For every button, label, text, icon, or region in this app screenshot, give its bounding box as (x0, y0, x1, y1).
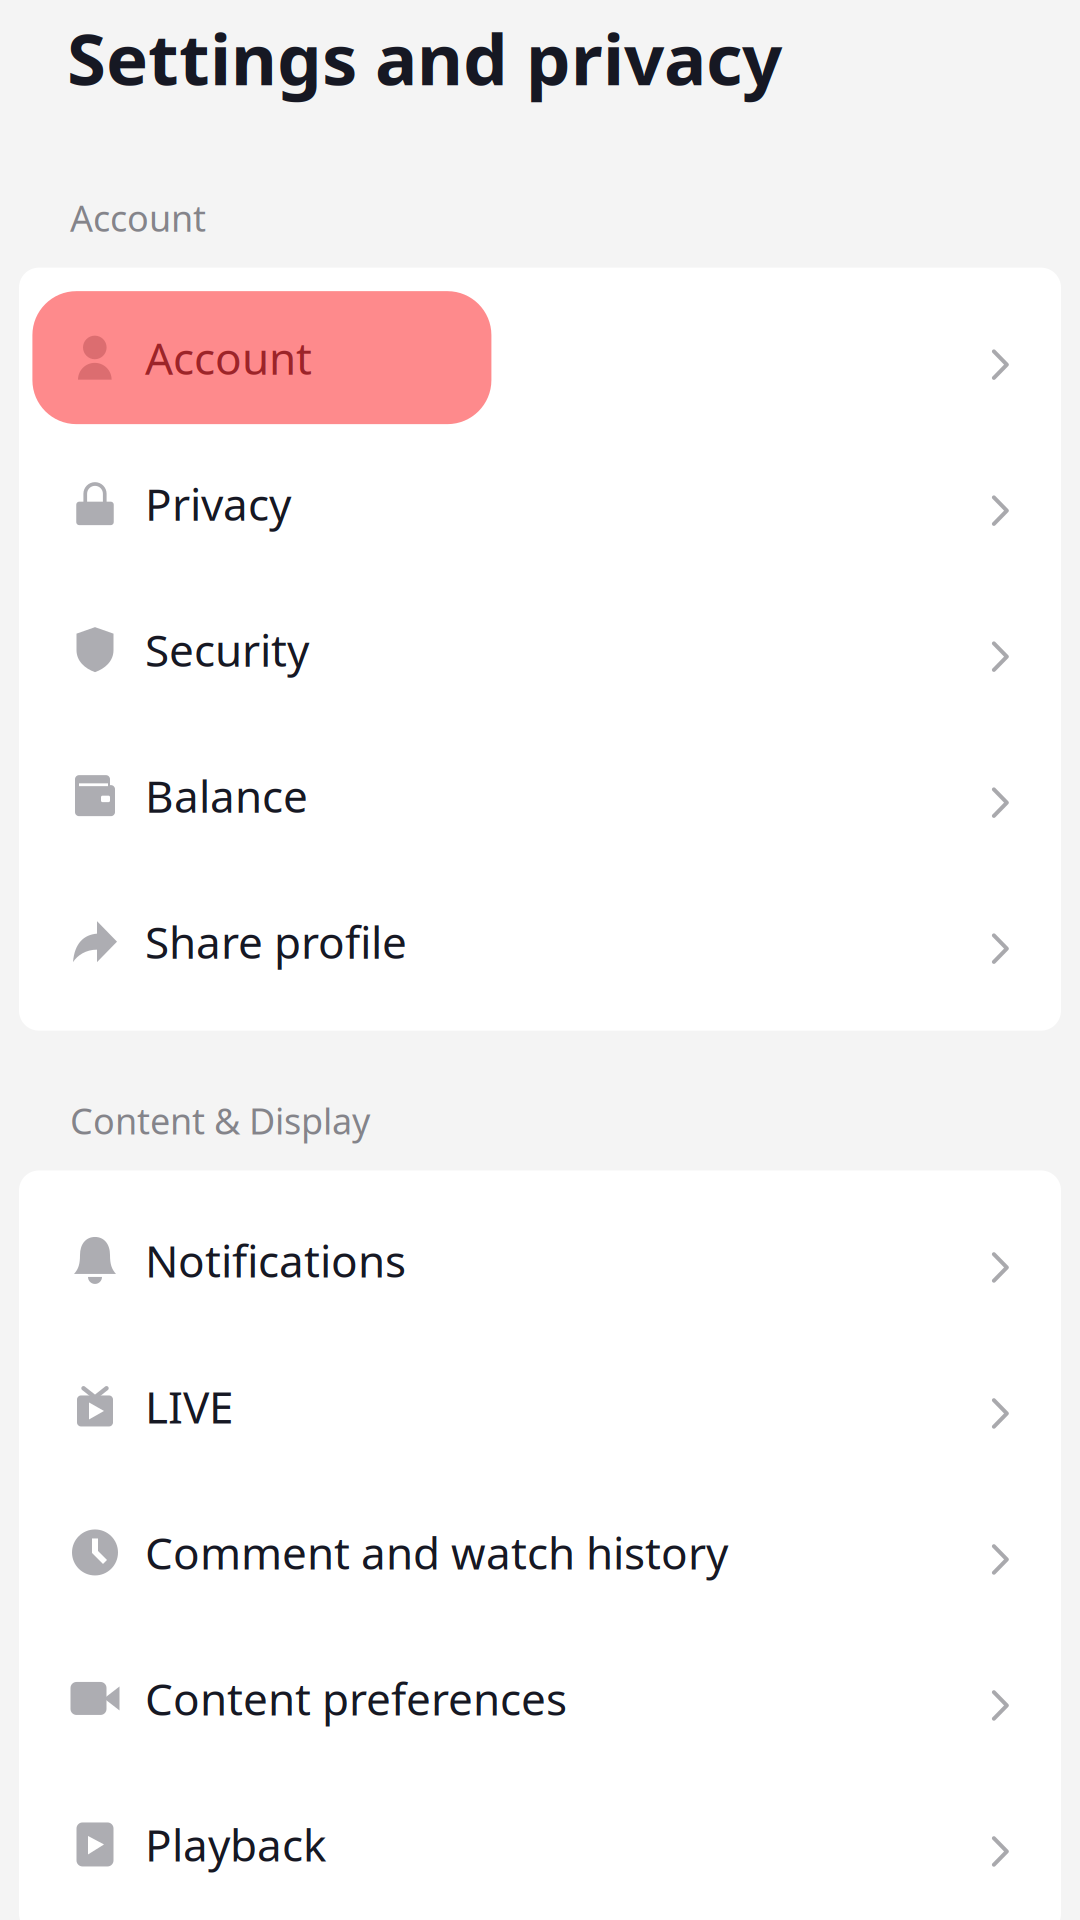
staticText: Privacy (145, 474, 291, 533)
button[interactable]: Security (19, 584, 1061, 730)
button[interactable]: Privacy (19, 438, 1061, 584)
button[interactable]: LIVE (19, 1340, 1061, 1486)
staticText: Notifications (145, 1231, 406, 1290)
staticText: Comment and watch history (145, 1523, 728, 1582)
staticText: Share profile (145, 912, 407, 971)
button[interactable]: Comment and watch history (19, 1486, 1061, 1632)
button[interactable]: Account (19, 292, 1061, 438)
button[interactable]: Share profile (19, 876, 1061, 1022)
staticText: Balance (145, 766, 308, 825)
button[interactable]: Playback (19, 1778, 1061, 1920)
button[interactable]: Content preferences (19, 1632, 1061, 1778)
staticText: LIVE (145, 1377, 233, 1436)
staticText: Settings and privacy (67, 11, 782, 105)
button[interactable]: Balance (19, 730, 1061, 876)
staticText: Content & Display (70, 1097, 370, 1144)
staticText: Security (145, 620, 309, 679)
staticText: Content preferences (145, 1669, 567, 1728)
staticText: Playback (145, 1815, 326, 1874)
staticText: Account (70, 194, 206, 242)
button[interactable]: Notifications (19, 1194, 1061, 1340)
staticText: Account (145, 328, 312, 387)
